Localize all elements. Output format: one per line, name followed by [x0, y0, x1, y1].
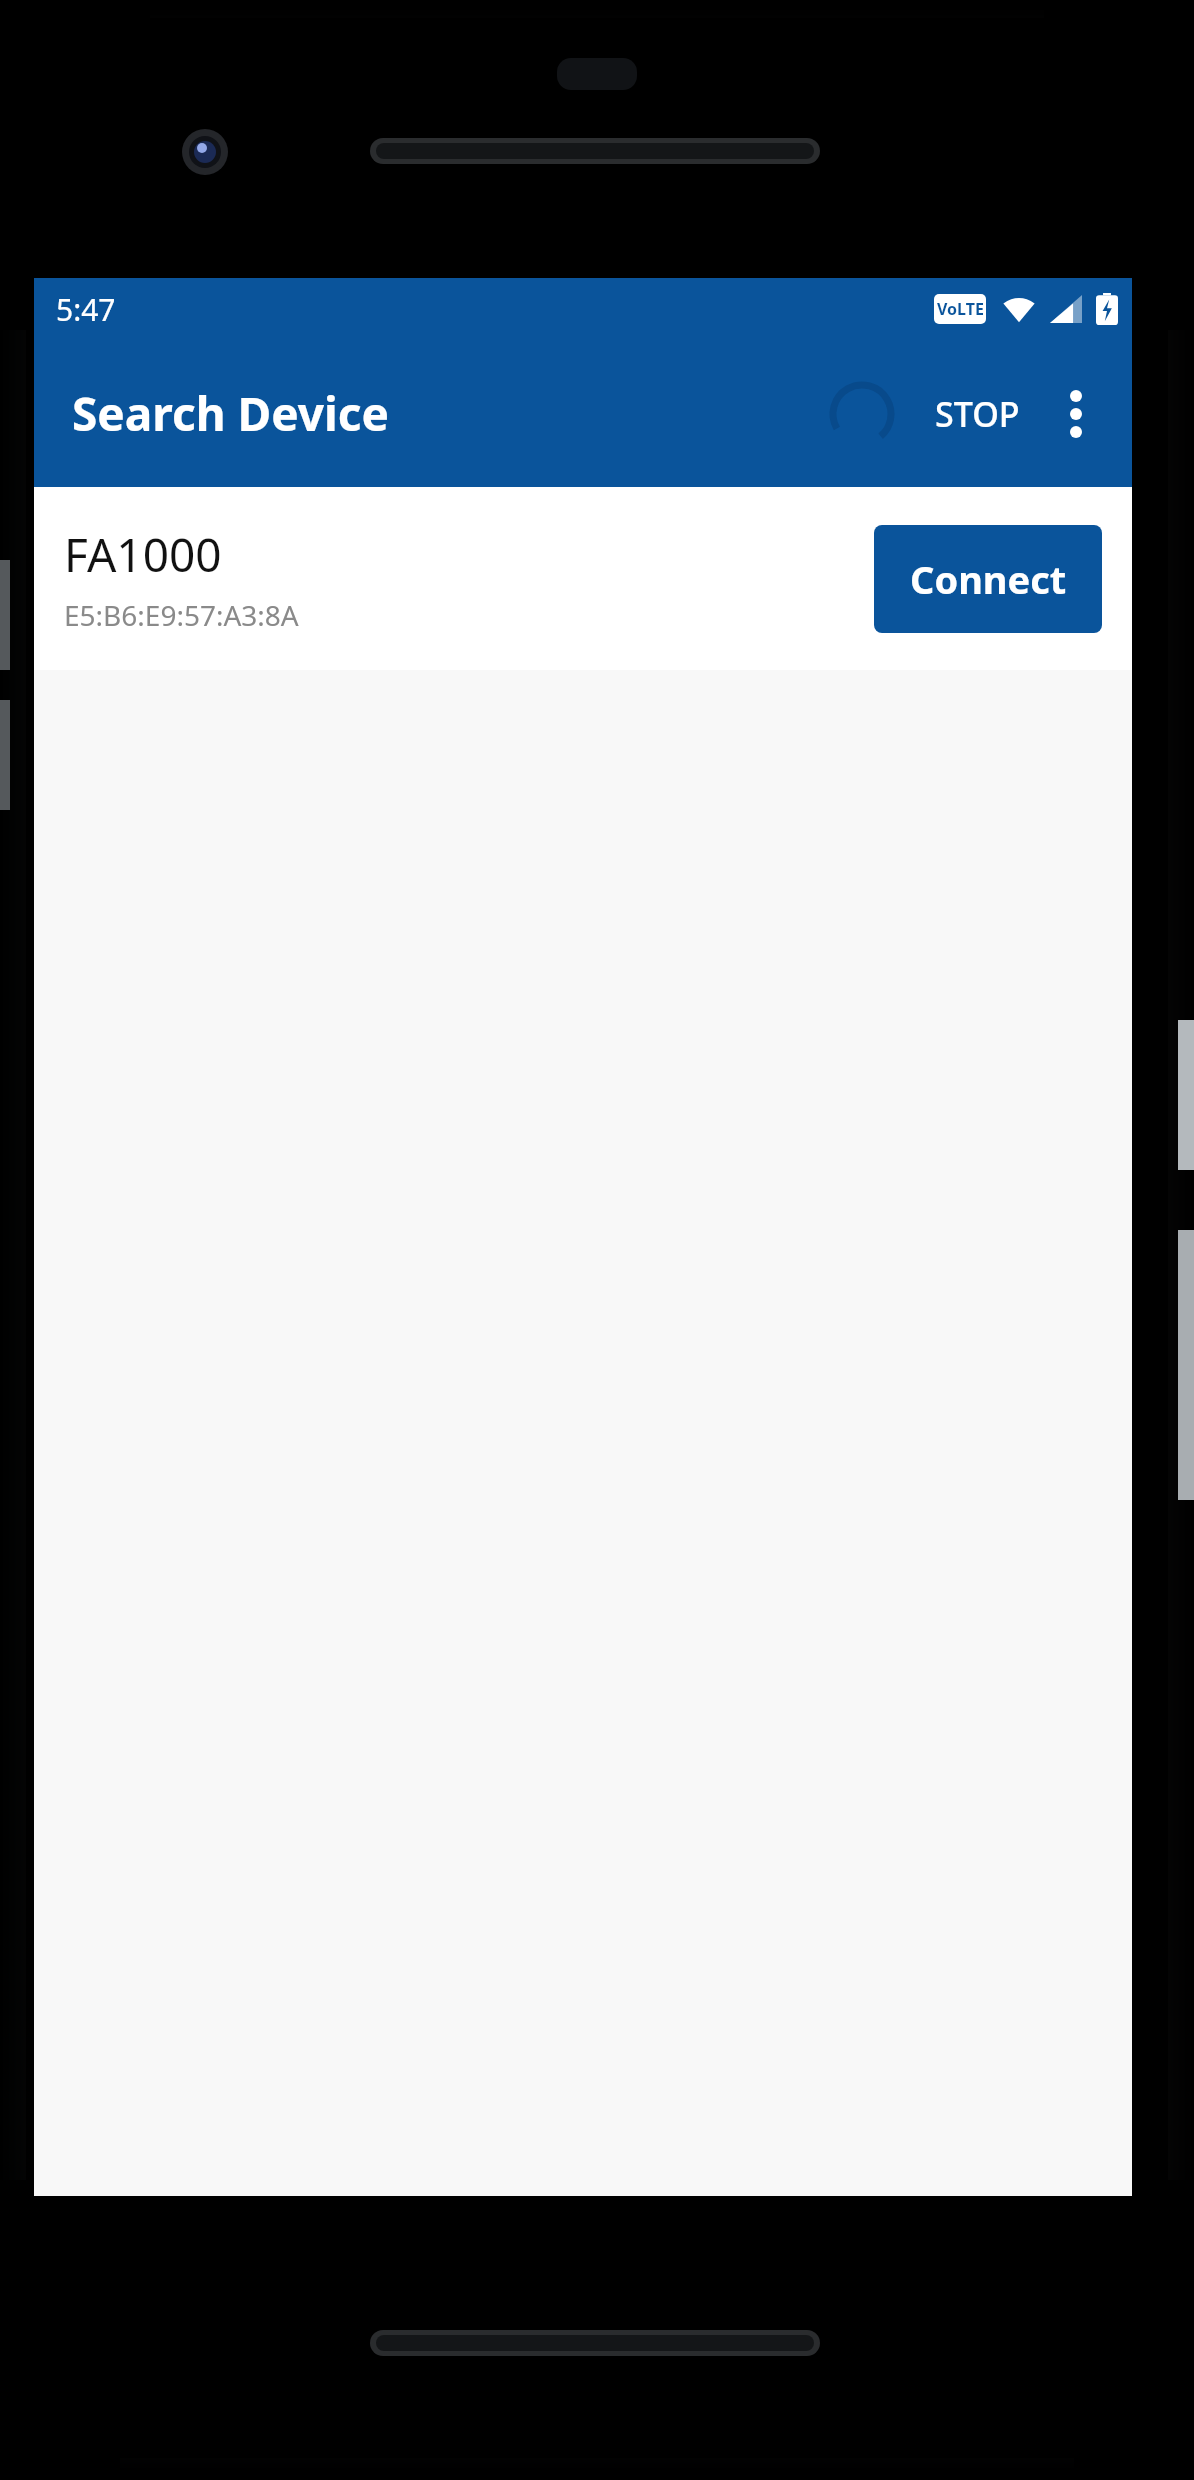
- staticText: Connect: [910, 553, 1067, 605]
- other: Scanning: [819, 371, 905, 457]
- button[interactable]: FA1000: [34, 487, 1132, 670]
- staticText: VoLTE: [937, 298, 984, 320]
- button[interactable]: STOP: [921, 375, 1034, 453]
- staticText: FA1000: [64, 523, 222, 586]
- staticText: E5:B6:E9:57:A3:8A: [64, 596, 299, 634]
- staticText: STOP: [935, 391, 1020, 437]
- button[interactable]: Connect: [874, 525, 1102, 633]
- button[interactable]: More options: [1034, 372, 1118, 456]
- staticText: Search Device: [72, 382, 390, 445]
- staticText: 5:47: [56, 289, 116, 330]
